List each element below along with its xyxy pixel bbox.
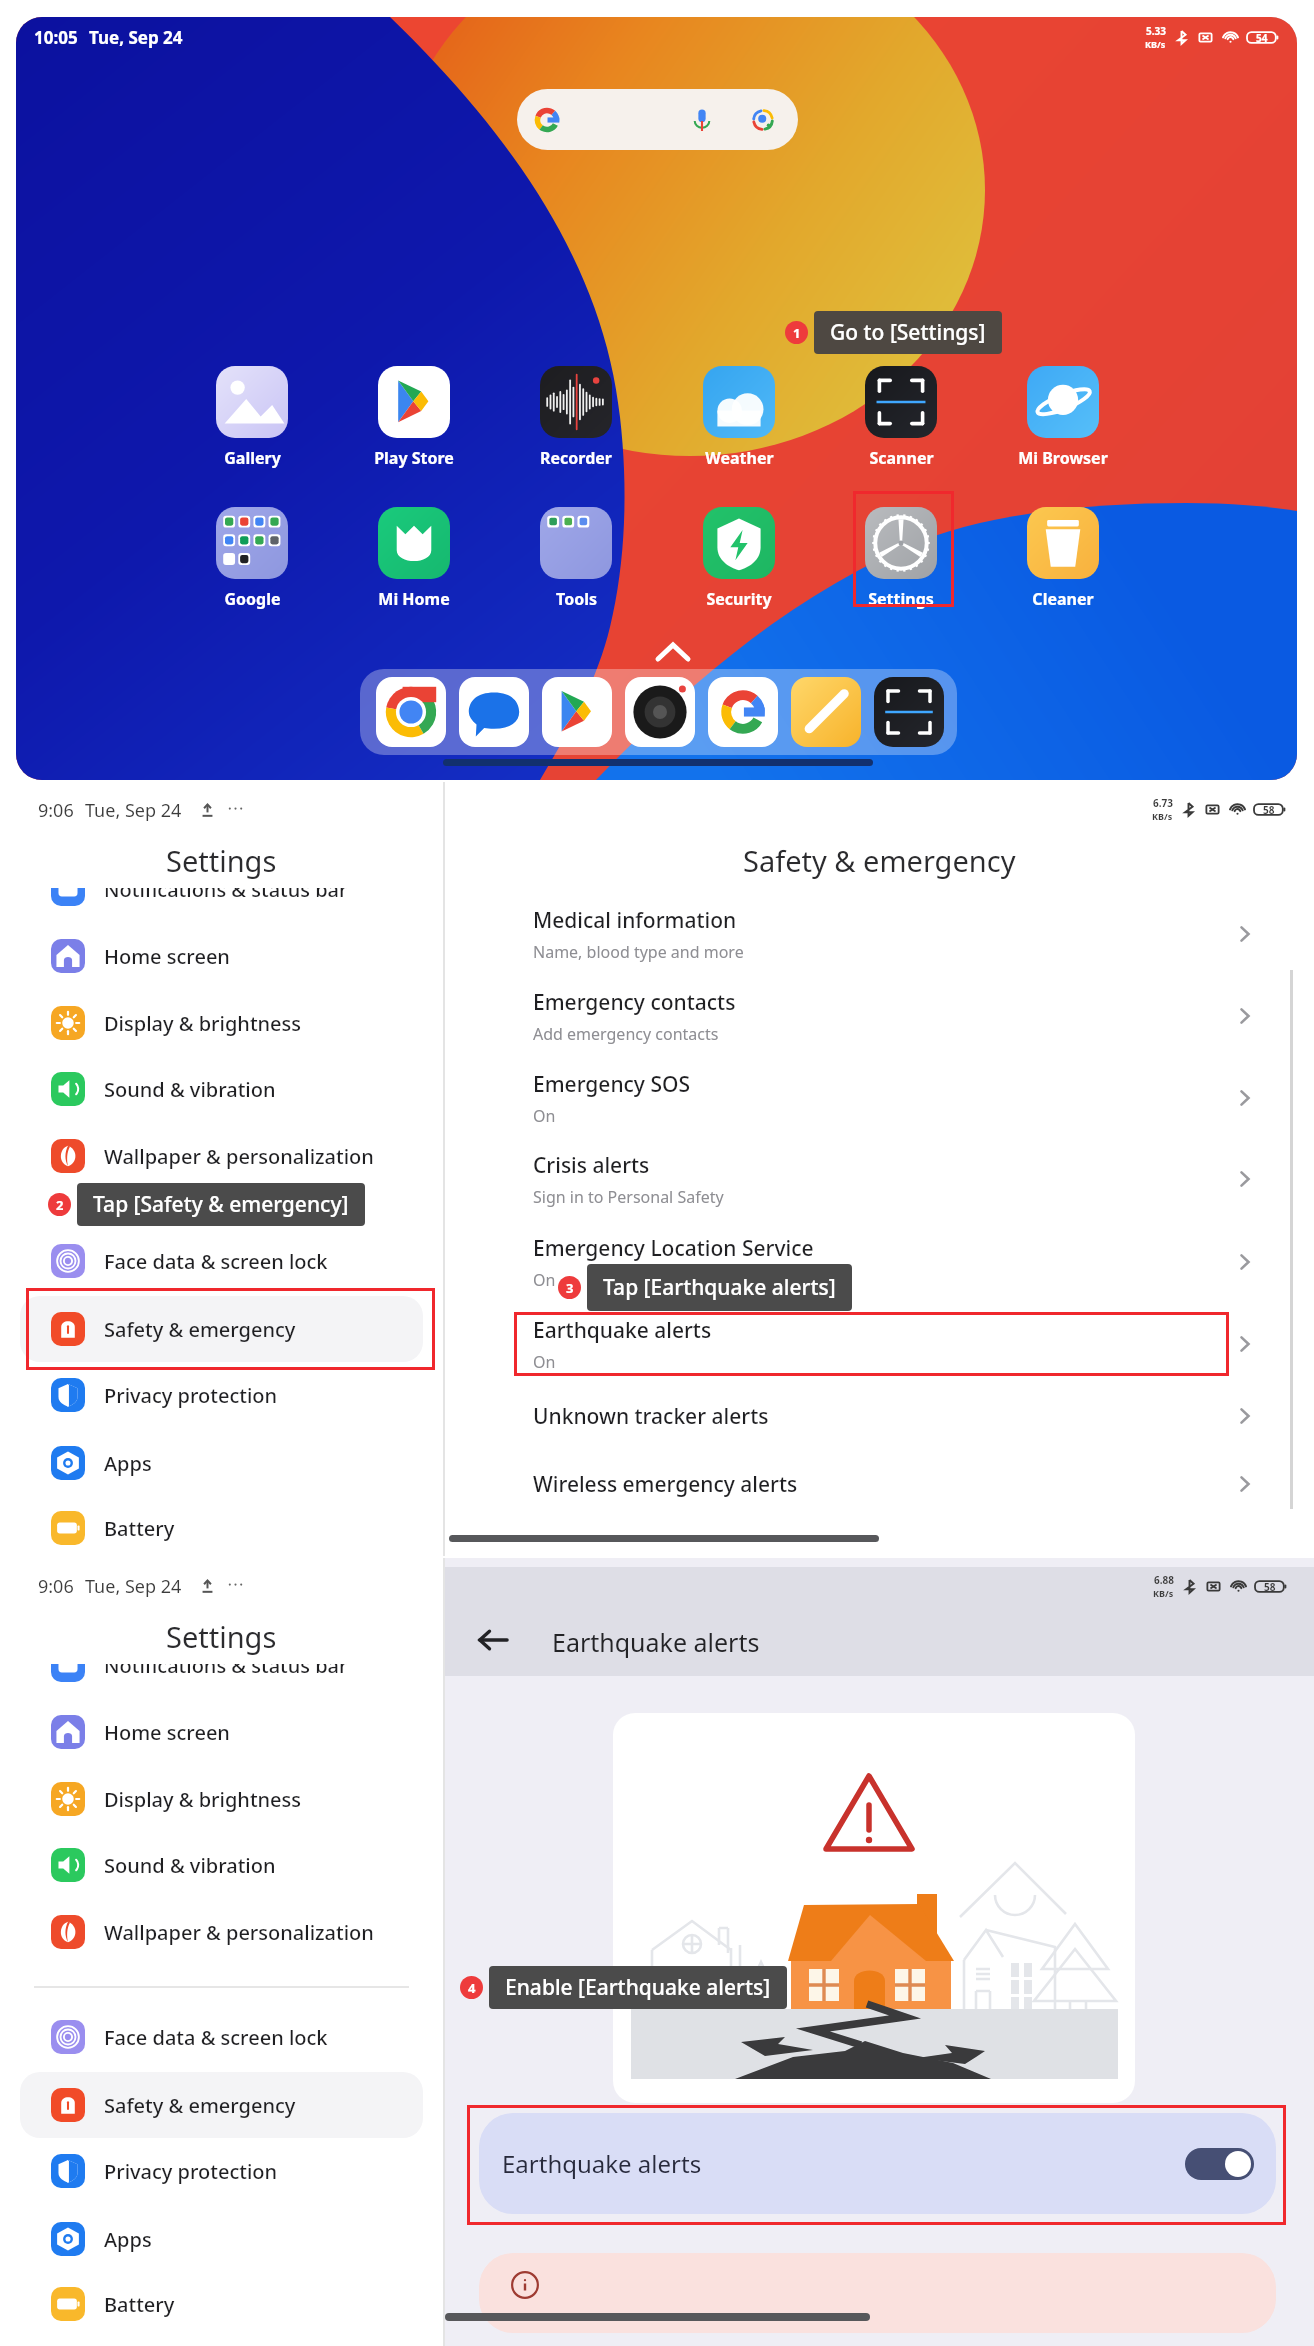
button[interactable]: Play Store	[542, 677, 612, 747]
button[interactable]: Battery	[51, 1495, 443, 1561]
button[interactable]: Gallery	[187, 366, 317, 474]
staticText: Crisis alerts	[533, 1151, 650, 1180]
button[interactable]: Messages	[459, 677, 529, 747]
staticText: Safety & emergency	[743, 841, 1016, 880]
staticText: Settings	[166, 1617, 277, 1656]
button[interactable]: Open app drawer	[650, 635, 696, 669]
staticText: Enable [Earthquake alerts]	[505, 1973, 771, 2002]
button[interactable]: Google	[187, 507, 317, 615]
button[interactable]: Privacy protection	[51, 1362, 443, 1428]
staticText: Go to [Settings]	[830, 318, 986, 347]
staticText: Tue, Sep 24	[85, 798, 182, 823]
staticText: Gallery	[224, 447, 281, 469]
other: Open	[1234, 923, 1256, 945]
staticText: Tue, Sep 24	[89, 26, 183, 49]
other: Open	[1234, 1005, 1256, 1027]
button[interactable]: Safety & emergency	[51, 2072, 443, 2138]
button[interactable]: Chrome	[376, 677, 446, 747]
staticText: Unknown tracker alerts	[533, 1402, 769, 1431]
staticText: Notifications & status bar	[104, 1664, 348, 1679]
staticText: Earthquake alerts	[533, 1316, 712, 1345]
button[interactable]: Tools	[511, 507, 641, 615]
button[interactable]: Google Search	[517, 89, 798, 150]
button[interactable]: Sound & vibration	[51, 1832, 443, 1898]
button[interactable]: Recorder	[511, 366, 641, 474]
button[interactable]: Camera	[625, 677, 695, 747]
staticText: On	[533, 1105, 556, 1127]
button[interactable]: Mi Home	[349, 507, 479, 615]
staticText: Tue, Sep 24	[85, 1574, 182, 1599]
button[interactable]: Battery	[51, 2271, 443, 2337]
button[interactable]: Notes	[791, 677, 861, 747]
button[interactable]: Display & brightness	[51, 990, 443, 1056]
button[interactable]: Privacy protection	[51, 2138, 443, 2204]
button[interactable]: Scanner	[874, 677, 944, 747]
staticText: Home screen	[104, 943, 230, 970]
button[interactable]: Emergency contacts	[533, 975, 1256, 1057]
staticText: Emergency contacts	[533, 988, 736, 1017]
button[interactable]: Home screen	[51, 1699, 443, 1765]
button[interactable]: Mi Browser	[998, 366, 1128, 474]
staticText: Recorder	[540, 447, 612, 469]
staticText: Settings	[166, 841, 277, 880]
staticText: Apps	[104, 2226, 152, 2253]
staticText: Security	[706, 588, 772, 610]
staticText: 4	[468, 1979, 476, 1997]
button[interactable]: Google	[708, 677, 778, 747]
button[interactable]: Weather	[674, 366, 804, 474]
staticText: 9:06	[38, 798, 74, 823]
staticText: Sound & vibration	[104, 1076, 276, 1103]
staticText: Emergency SOS	[533, 1070, 690, 1099]
staticText: 6.73	[1153, 796, 1173, 810]
button[interactable]: Unknown tracker alerts	[533, 1375, 1256, 1457]
button[interactable]: Crisis alerts	[533, 1138, 1256, 1220]
button[interactable]: Notifications & status bar	[51, 888, 443, 922]
staticText: Earthquake alerts	[552, 1625, 760, 1659]
button[interactable]: Notifications & status bar	[51, 1664, 443, 1698]
staticText: Wallpaper & personalization	[104, 1143, 374, 1170]
button[interactable]: Sound & vibration	[51, 1056, 443, 1122]
button[interactable]: Wireless emergency alerts	[533, 1443, 1256, 1525]
staticText: Notifications & status bar	[104, 888, 348, 903]
button[interactable]: Apps	[51, 2206, 443, 2272]
other: Open	[1234, 1251, 1256, 1273]
button[interactable]: Display & brightness	[51, 1766, 443, 1832]
button[interactable]: Medical information	[533, 893, 1256, 975]
staticText: Mi Browser	[1018, 447, 1108, 469]
button[interactable]: Apps	[51, 1430, 443, 1496]
staticText: 5.33	[1146, 24, 1166, 38]
button[interactable]: Earthquake alerts	[533, 1303, 1256, 1385]
staticText: Emergency Location Service	[533, 1234, 814, 1263]
button[interactable]: Play Store	[349, 366, 479, 474]
button[interactable]: Security	[674, 507, 804, 615]
other: Open	[1234, 1168, 1256, 1190]
button[interactable]: Safety & emergency	[51, 1296, 443, 1362]
button[interactable]: Face data & screen lock	[51, 1228, 443, 1294]
staticText: Face data & screen lock	[104, 1248, 328, 1275]
button[interactable]: Wallpaper & personalization	[51, 1899, 443, 1965]
button[interactable]: Settings	[836, 507, 966, 615]
staticText: Display & brightness	[104, 1786, 301, 1813]
button[interactable]: Emergency Location Service	[533, 1221, 1256, 1303]
staticText: Safety & emergency	[104, 1316, 296, 1343]
other: Open	[1234, 1087, 1256, 1109]
staticText: Weather	[705, 447, 774, 469]
button[interactable]: Earthquake alerts	[479, 2113, 1276, 2214]
staticText: Home screen	[104, 1719, 230, 1746]
other: Open	[1234, 1333, 1256, 1355]
button[interactable]: Cleaner	[998, 507, 1128, 615]
button[interactable]: Back	[471, 1618, 515, 1662]
button[interactable]: Scanner	[836, 366, 966, 474]
button[interactable]: Wallpaper & personalization	[51, 1123, 443, 1189]
staticText: Wireless emergency alerts	[533, 1470, 798, 1499]
staticText: Privacy protection	[104, 2158, 278, 2185]
staticText: Face data & screen lock	[104, 2024, 328, 2051]
staticText: Sign in to Personal Safety	[533, 1186, 724, 1208]
button[interactable]: Home screen	[51, 923, 443, 989]
staticText: Cleaner	[1032, 588, 1094, 610]
button[interactable]: Face data & screen lock	[51, 2004, 443, 2070]
button[interactable]: Emergency SOS	[533, 1057, 1256, 1139]
button[interactable]: Google Lens	[750, 107, 776, 133]
other: Google Search	[534, 107, 560, 133]
button[interactable]: Voice search	[689, 107, 715, 133]
